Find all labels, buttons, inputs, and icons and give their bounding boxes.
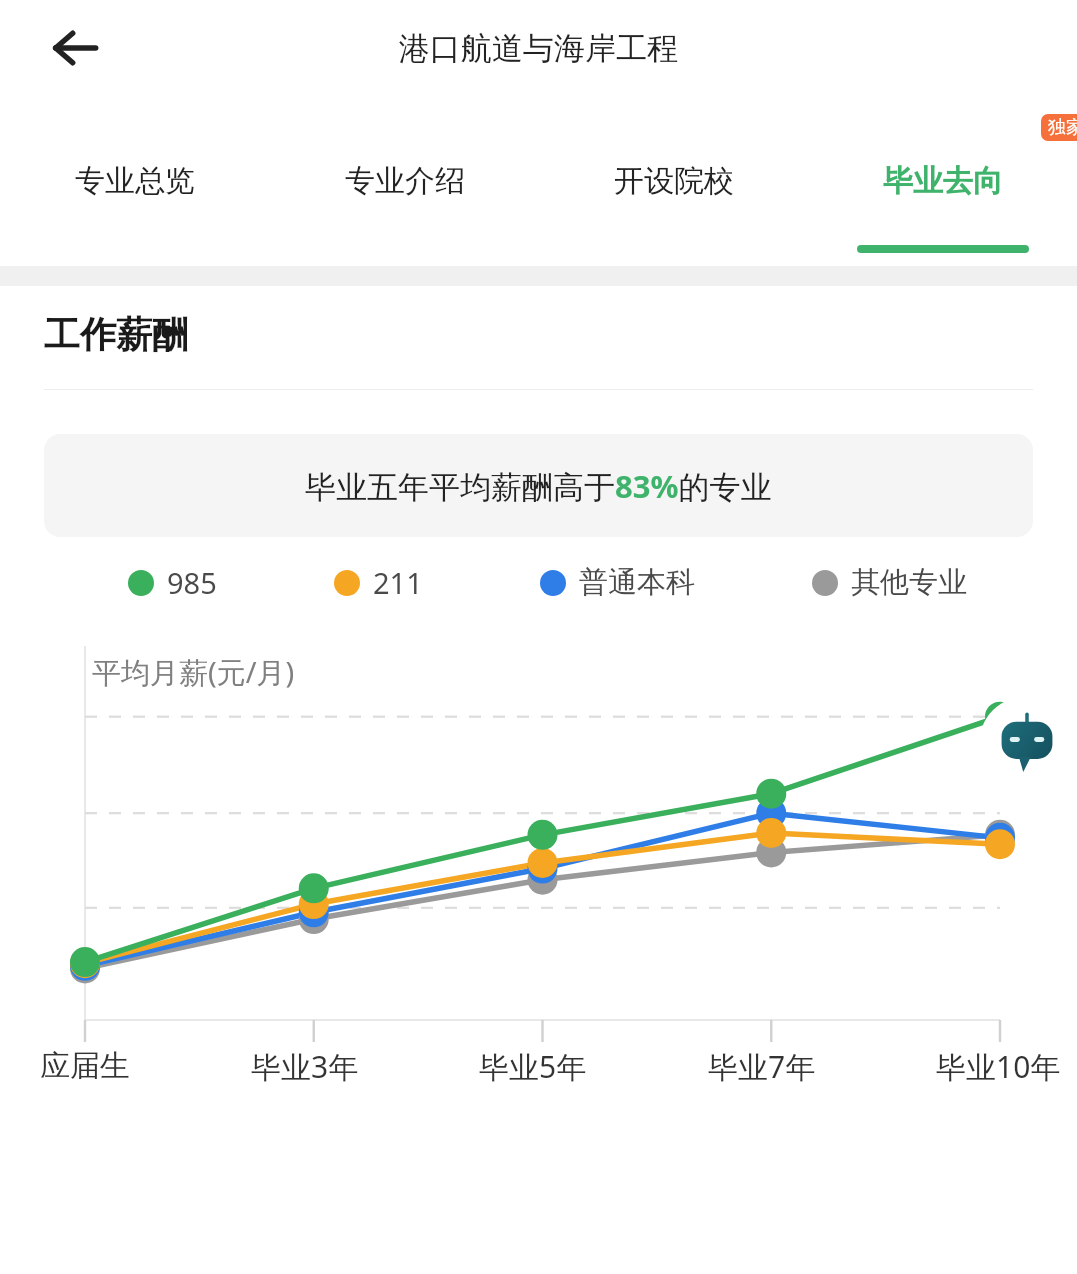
staticText: 211 (373, 563, 423, 602)
button[interactable]: 开设院校 (539, 96, 808, 266)
staticText: 应届生 (40, 1047, 130, 1085)
staticText: 985 (167, 563, 217, 602)
staticText: 普通本科 (579, 564, 695, 601)
staticText: 专业介绍 (345, 162, 465, 200)
staticText: 平均月薪(元/月) (92, 652, 295, 692)
button[interactable]: 毕业五年平均薪酬高于83%的专业 (44, 434, 1033, 537)
button[interactable]: Chat assistant (979, 696, 1075, 792)
button[interactable]: 专业介绍 (270, 96, 539, 266)
staticText: 专业总览 (75, 162, 195, 200)
staticText: 毕业五年平均薪酬高于83%的专业 (305, 465, 772, 507)
staticText: 工作薪酬 (44, 312, 188, 357)
staticText: 毕业10年 (936, 1046, 1061, 1087)
staticText: 开设院校 (614, 162, 734, 200)
button[interactable]: 211 (334, 563, 423, 602)
staticText: 毕业3年 (251, 1046, 359, 1087)
button[interactable]: Back (34, 7, 116, 89)
staticText: 毕业7年 (708, 1046, 816, 1087)
staticText: 毕业去向 (883, 162, 1003, 200)
button[interactable]: 985 (128, 563, 217, 602)
button[interactable]: 其他专业 (812, 564, 967, 601)
staticText: 独家 (1048, 116, 1077, 139)
button[interactable]: 普通本科 (540, 564, 695, 601)
staticText: 港口航道与海岸工程 (399, 29, 678, 68)
staticText: 其他专业 (851, 564, 967, 601)
button[interactable]: 毕业去向 (808, 96, 1077, 266)
button[interactable]: 专业总览 (0, 96, 270, 266)
staticText: 毕业5年 (479, 1046, 587, 1087)
